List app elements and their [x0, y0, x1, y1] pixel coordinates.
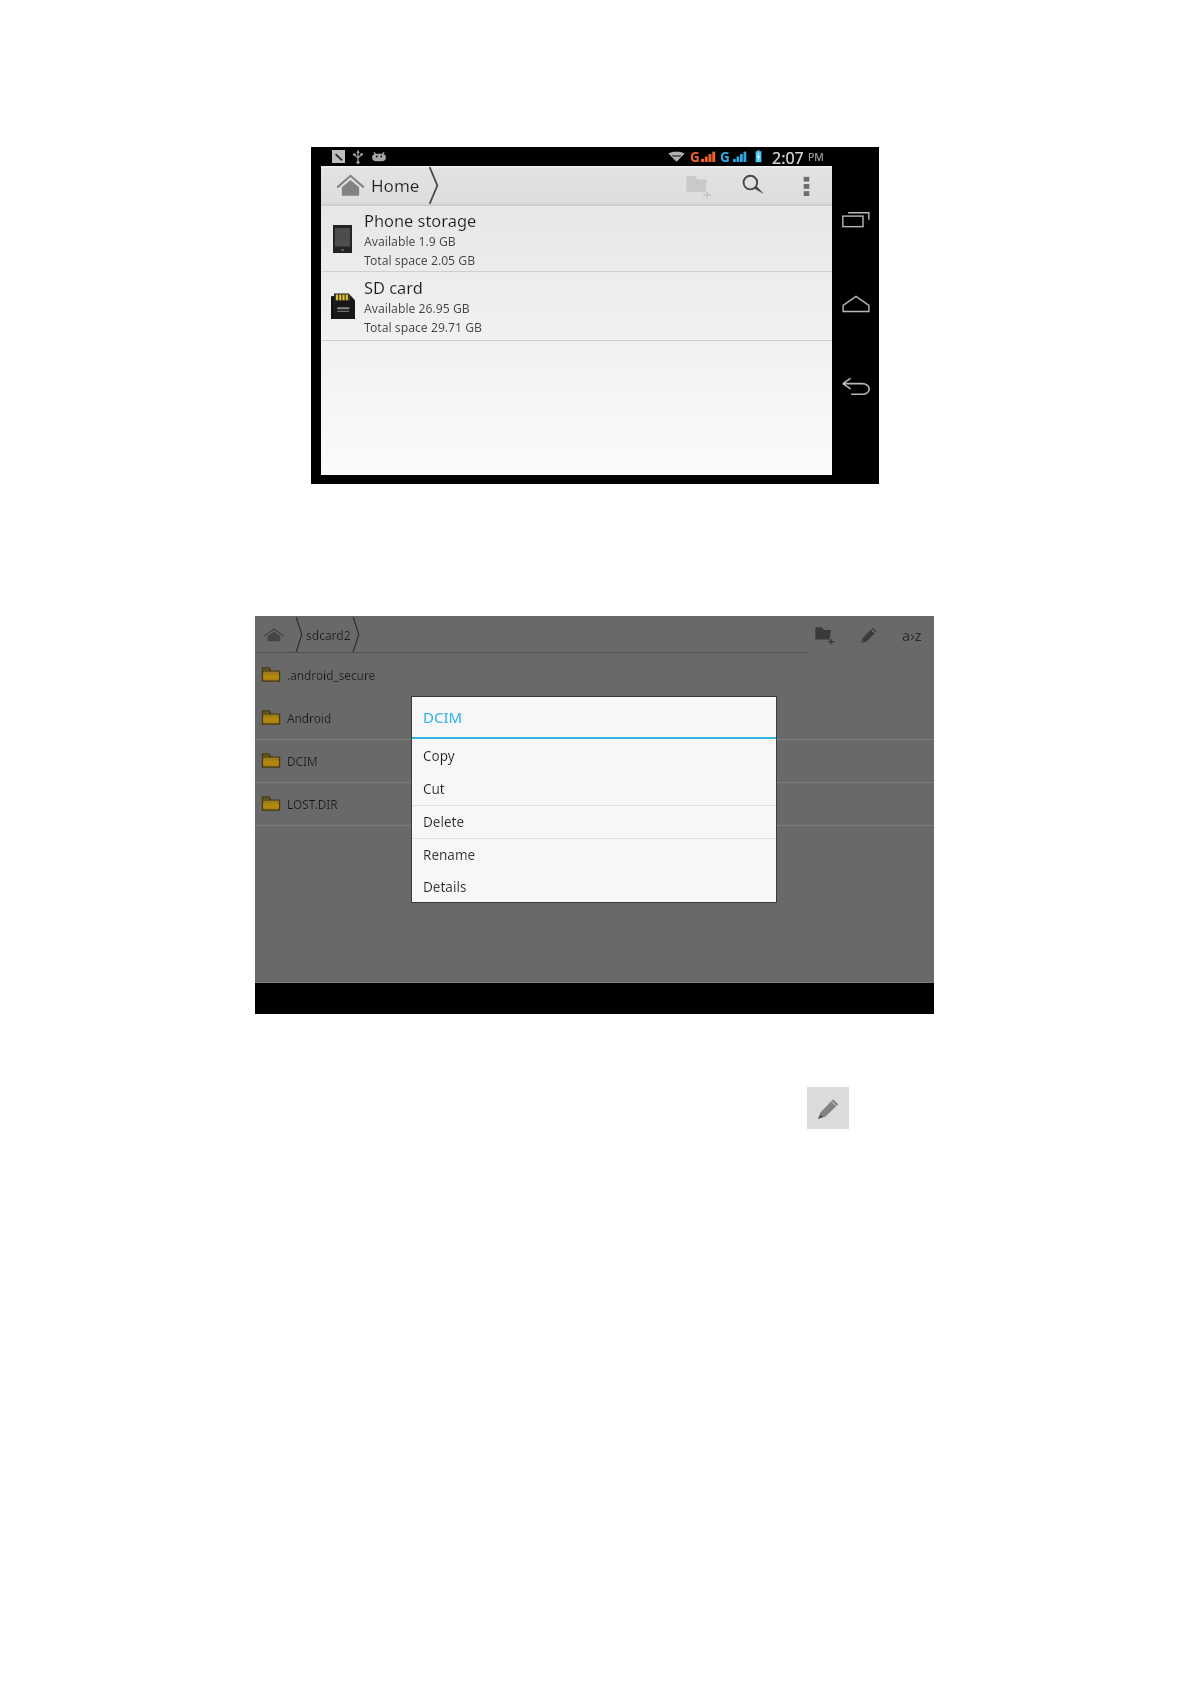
- button[interactable]: Cut: [412, 773, 776, 805]
- button[interactable]: New folder: [802, 616, 848, 653]
- button[interactable]: More options: [780, 166, 832, 205]
- button[interactable]: Edit: [807, 1087, 849, 1129]
- staticText: DCIM: [423, 707, 463, 727]
- button[interactable]: Home: [833, 281, 879, 327]
- button[interactable]: Home: [321, 166, 832, 205]
- button[interactable]: Edit: [848, 616, 890, 653]
- staticText: 2:07: [772, 147, 804, 166]
- staticText: G: [690, 148, 700, 166]
- staticText: Available 26.95 GB: [364, 300, 470, 317]
- button[interactable]: Back: [833, 364, 879, 410]
- button[interactable]: Rename: [412, 839, 776, 871]
- staticText: Home: [371, 174, 420, 197]
- button[interactable]: .android_secure: [255, 653, 934, 696]
- staticText: Cut: [423, 780, 445, 798]
- button[interactable]: Details: [412, 871, 776, 902]
- staticText: Copy: [423, 747, 455, 765]
- button[interactable]: Android: [255, 696, 934, 739]
- button[interactable]: sdcard2: [255, 616, 934, 653]
- staticText: Total space 29.71 GB: [364, 319, 483, 336]
- staticText: Available 1.9 GB: [364, 233, 456, 250]
- staticText: Android: [287, 710, 332, 726]
- staticText: .android_secure: [287, 667, 376, 683]
- staticText: LOST.DIR: [287, 796, 338, 812]
- button[interactable]: Search: [726, 166, 780, 205]
- staticText: Phone storage: [364, 209, 477, 231]
- button[interactable]: Phone storage: [321, 206, 832, 271]
- staticText: Details: [423, 878, 467, 896]
- button[interactable]: Delete: [412, 806, 776, 838]
- staticText: G: [720, 148, 730, 166]
- staticText: a›z: [902, 625, 922, 645]
- button[interactable]: New folder: [672, 166, 726, 205]
- staticText: PM: [808, 150, 824, 164]
- staticText: Total space 2.05 GB: [364, 252, 476, 269]
- button[interactable]: DCIM: [255, 739, 934, 782]
- button[interactable]: LOST.DIR: [255, 782, 934, 825]
- staticText: sdcard2: [306, 627, 351, 643]
- button[interactable]: Sort: [890, 616, 934, 653]
- button[interactable]: SD card: [321, 272, 832, 340]
- button[interactable]: Copy: [412, 739, 776, 773]
- staticText: Delete: [423, 813, 465, 831]
- staticText: Rename: [423, 846, 476, 864]
- staticText: DCIM: [287, 753, 318, 769]
- button[interactable]: Recents: [833, 196, 879, 242]
- staticText: SD card: [364, 276, 423, 298]
